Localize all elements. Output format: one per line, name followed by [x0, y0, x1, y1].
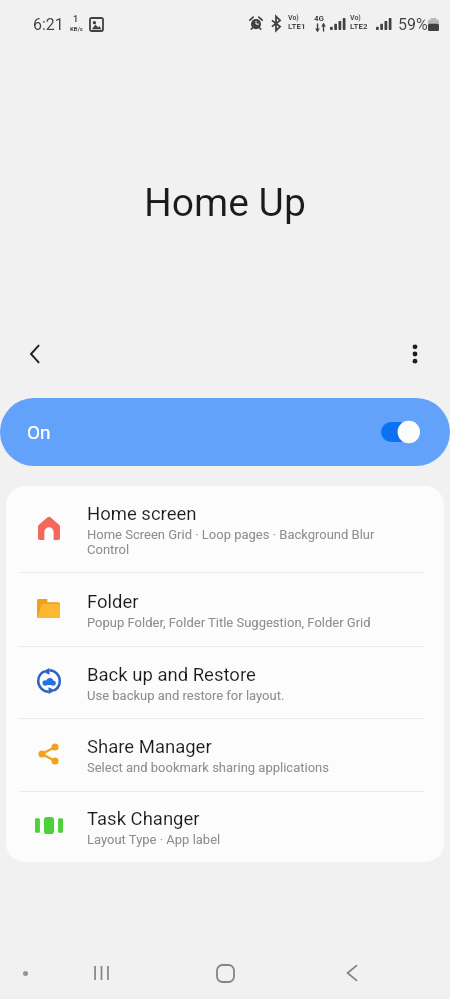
staticText: LTE1 [288, 22, 306, 31]
button[interactable]: Back up and Restore [6, 647, 444, 719]
button[interactable]: On [0, 398, 450, 466]
button[interactable]: More options [389, 328, 441, 380]
staticText: Folder [87, 591, 139, 613]
staticText: Vo) [350, 14, 361, 22]
staticText: Share Manager [87, 736, 212, 758]
other: On [378, 419, 422, 447]
staticText: Home Screen Grid · Loop pages · Backgrou… [87, 527, 381, 557]
staticText: 1 [73, 14, 79, 25]
button[interactable]: Home [200, 948, 250, 998]
staticText: Home Up [144, 180, 306, 226]
button[interactable]: Share Manager [6, 719, 444, 792]
button[interactable]: Home screen [6, 486, 444, 573]
button[interactable]: Back [327, 948, 377, 998]
staticText: Popup Folder, Folder Title Suggestion, F… [87, 615, 371, 630]
staticText: KB/s [70, 25, 83, 32]
button[interactable]: Task Changer [6, 792, 444, 862]
staticText: Layout Type · App label [87, 832, 221, 847]
staticText: Vo) [288, 14, 299, 22]
button[interactable]: Navigate up [9, 328, 61, 380]
staticText: Use backup and restore for layout. [87, 688, 285, 703]
staticText: LTE2 [350, 22, 368, 31]
staticText: Select and bookmark sharing applications [87, 760, 329, 775]
staticText: Task Changer [87, 808, 200, 830]
staticText: 59% [398, 15, 428, 34]
staticText: Home screen [87, 503, 197, 525]
button[interactable]: Recent apps [76, 948, 126, 998]
staticText: 4G [314, 14, 325, 23]
staticText: 6:21 [33, 15, 64, 34]
button[interactable]: Folder [6, 573, 444, 647]
staticText: On [27, 421, 51, 443]
staticText: Back up and Restore [87, 664, 256, 686]
